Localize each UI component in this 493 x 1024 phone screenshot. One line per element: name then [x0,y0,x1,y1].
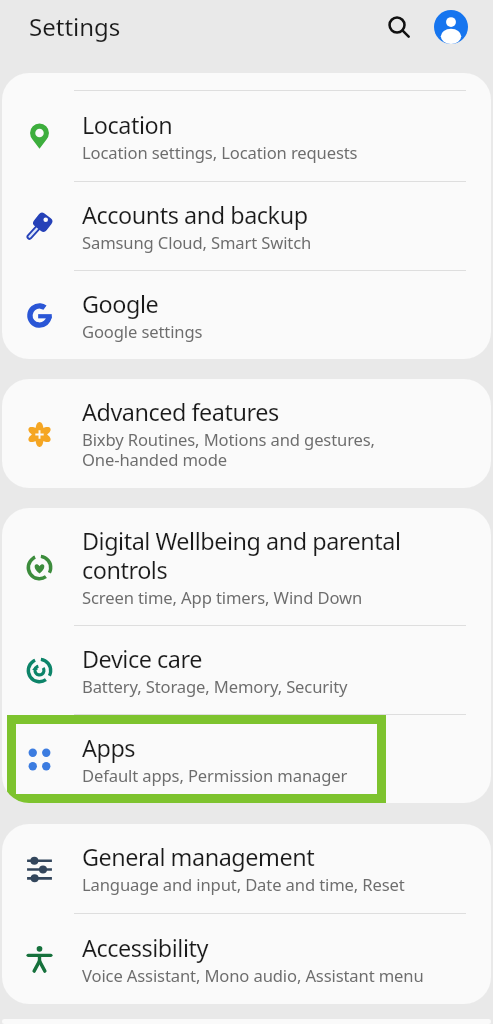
button[interactable]: Location [2,91,491,181]
button[interactable]: Accounts and backup [2,182,491,270]
button[interactable]: Account [429,5,473,49]
staticText: Bixby Routines, Motions and gestures, On… [82,428,375,471]
staticText: Settings [29,10,121,43]
button[interactable]: Advanced features [2,379,491,488]
button[interactable]: Google [2,271,491,359]
button[interactable]: General management [2,824,491,913]
staticText: Location settings, Location requests [82,141,358,164]
button[interactable]: Apps [2,715,491,803]
staticText: Default apps, Permission manager [82,764,348,787]
button[interactable]: Digital Wellbeing and parental controls [2,508,491,625]
staticText: Samsung Cloud, Smart Switch [82,231,312,254]
staticText: Advanced features [82,396,279,428]
staticText: Apps [82,732,136,764]
staticText: Google settings [82,320,203,343]
staticText: Digital Wellbeing and parental controls [82,525,401,586]
staticText: Voice Assistant, Mono audio, Assistant m… [82,964,424,987]
staticText: Battery, Storage, Memory, Security [82,675,348,698]
staticText: Location [82,109,173,141]
staticText: General management [82,841,315,873]
button[interactable]: Accessibility [2,914,491,1004]
button[interactable]: Search [377,5,421,49]
staticText: Accessibility [82,932,208,964]
staticText: Device care [82,643,202,675]
staticText: Screen time, App timers, Wind Down [82,586,363,609]
button[interactable]: Device care [2,626,491,714]
staticText: Language and input, Date and time, Reset [82,873,405,896]
staticText: Accounts and backup [82,199,308,231]
staticText: Google [82,288,159,320]
